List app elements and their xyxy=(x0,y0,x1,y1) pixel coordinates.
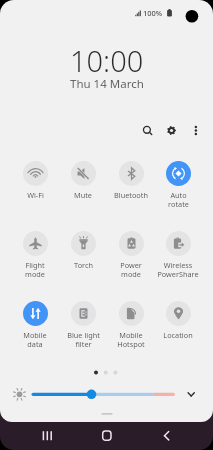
staticText: Torch xyxy=(74,260,93,270)
staticText: Blue light filter xyxy=(67,330,100,349)
button[interactable]: Back xyxy=(163,421,193,450)
button[interactable]: Settings xyxy=(164,123,179,138)
button[interactable]: Torch xyxy=(59,228,107,270)
staticText: Wi-Fi xyxy=(27,190,44,200)
button[interactable]: More options xyxy=(188,123,203,138)
button[interactable]: Mobile Hotspot xyxy=(107,298,155,349)
staticText: Wireless PowerShare xyxy=(157,260,199,279)
button[interactable]: Expand quick settings xyxy=(182,385,201,404)
button[interactable]: Home xyxy=(92,421,122,450)
button[interactable]: Wireless PowerShare xyxy=(154,228,202,279)
staticText: Flight mode xyxy=(25,260,45,279)
staticText: 10:00 xyxy=(70,41,144,80)
staticText: Auto rotate xyxy=(168,190,189,209)
staticText: Location xyxy=(163,330,193,340)
button[interactable]: Mute xyxy=(59,158,107,200)
button[interactable]: Flight mode xyxy=(11,228,59,279)
staticText: Mute xyxy=(74,190,92,200)
button[interactable]: Bluetooth xyxy=(107,158,155,200)
button[interactable]: Brightness xyxy=(27,386,179,403)
staticText: Mobile data xyxy=(23,330,47,349)
staticText: Thu 14 March xyxy=(70,76,144,92)
button[interactable]: Search xyxy=(140,123,155,138)
button[interactable]: Blue light filter xyxy=(59,298,107,349)
button[interactable]: Auto rotate xyxy=(154,158,202,209)
button[interactable]: Power mode xyxy=(107,228,155,279)
button[interactable]: Mobile data xyxy=(11,298,59,349)
staticText: Bluetooth xyxy=(114,190,148,200)
staticText: 100% xyxy=(143,8,163,18)
button[interactable]: Wi-Fi xyxy=(11,158,59,200)
staticText: Power mode xyxy=(120,260,142,279)
button[interactable]: Location xyxy=(154,298,202,340)
staticText: Mobile Hotspot xyxy=(117,330,145,349)
button[interactable]: Recents xyxy=(21,421,51,450)
